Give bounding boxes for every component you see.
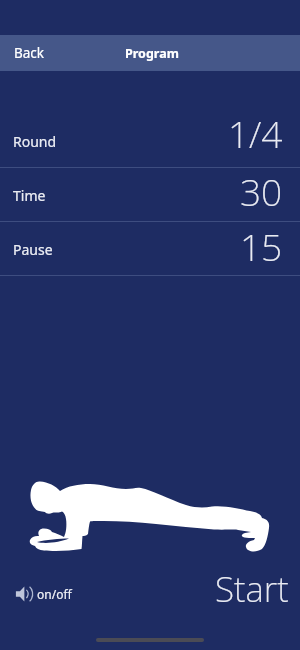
other: Sound on/off: [15, 585, 33, 603]
staticText: Program: [125, 45, 179, 62]
staticText: Start: [215, 565, 289, 613]
staticText: 30: [240, 166, 283, 216]
button[interactable]: Round: [0, 114, 300, 167]
staticText: Round: [13, 132, 57, 151]
staticText: Back: [14, 44, 45, 62]
staticText: Pause: [13, 240, 53, 259]
button[interactable]: Start: [201, 561, 300, 617]
staticText: Time: [13, 186, 46, 205]
button[interactable]: Pause: [0, 222, 300, 275]
button[interactable]: Back: [0, 36, 59, 70]
button[interactable]: Time: [0, 168, 300, 221]
staticText: on/off: [37, 586, 72, 602]
button[interactable]: Sound on/off: [9, 582, 80, 606]
staticText: 1/4: [228, 108, 283, 158]
staticText: 15: [240, 221, 283, 271]
